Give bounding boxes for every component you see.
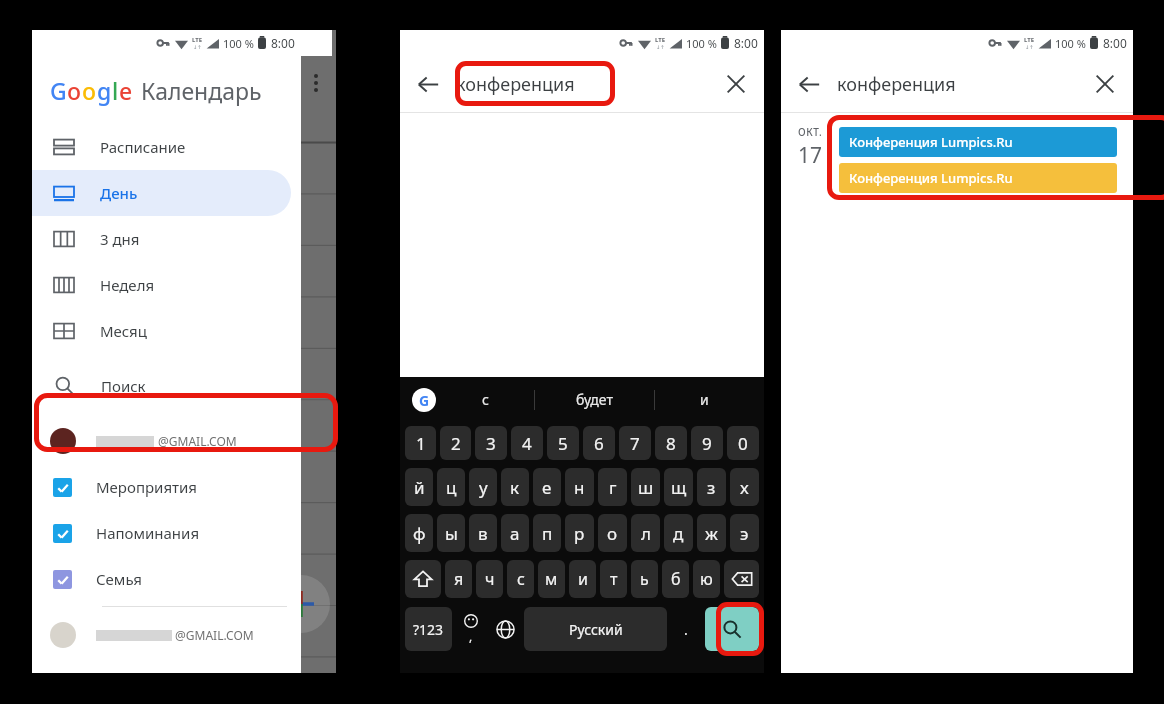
staticText: н [574, 476, 585, 499]
button[interactable]: 7 [619, 426, 651, 460]
staticText: ц [446, 476, 457, 499]
button[interactable]: Конференция Lumpics.Ru [839, 127, 1117, 157]
staticText: з [707, 476, 716, 499]
button[interactable]: @GMAIL.COM [32, 615, 301, 655]
button[interactable]: ю [693, 560, 720, 598]
button[interactable]: е [533, 468, 561, 506]
button[interactable]: ы [437, 514, 465, 552]
button[interactable]: с [507, 560, 534, 598]
button[interactable]: Месяц [32, 308, 291, 354]
button[interactable]: Google [412, 388, 436, 412]
button[interactable]: т [600, 560, 627, 598]
staticText: Русский [569, 620, 623, 639]
button[interactable]: ч [476, 560, 503, 598]
staticText: ж [705, 522, 718, 545]
button[interactable]: Напоминания [32, 510, 301, 556]
staticText: 3 дня [100, 229, 140, 249]
staticText: . [684, 620, 688, 639]
button[interactable]: 9 [691, 426, 723, 460]
staticText: л [641, 522, 651, 545]
button[interactable]: 1 [405, 426, 436, 460]
button[interactable]: Очистить [1077, 56, 1133, 112]
button[interactable]: 5 [547, 426, 579, 460]
staticText: 8 [666, 432, 676, 455]
button[interactable] [705, 607, 759, 651]
button[interactable]: с [436, 377, 534, 422]
button[interactable]: @GMAIL.COM [32, 418, 301, 464]
staticText: г [609, 476, 617, 499]
button[interactable]: р [565, 514, 594, 552]
button[interactable]: ц [437, 468, 465, 506]
button[interactable]: Очистить [708, 56, 764, 112]
staticText: б [671, 568, 681, 590]
staticText: х [740, 476, 749, 499]
staticText: Месяц [100, 321, 147, 341]
staticText: LTE [655, 36, 666, 44]
staticText: ю [700, 568, 713, 590]
button[interactable]: ь [631, 560, 658, 598]
button[interactable]: в [469, 514, 497, 552]
button[interactable]: 8 [655, 426, 687, 460]
button[interactable]: Мероприятия [32, 464, 301, 510]
button[interactable]: будет [535, 377, 654, 422]
button[interactable]: 4 [511, 426, 543, 460]
button[interactable] [490, 607, 520, 651]
button[interactable]: я [445, 560, 472, 598]
staticText: у [479, 476, 488, 499]
button[interactable]: Поиск [32, 360, 301, 410]
staticText: Напоминания [96, 523, 200, 543]
button[interactable]: д [664, 514, 693, 552]
staticText: 17 [798, 141, 823, 170]
staticText: o [82, 75, 97, 106]
staticText: конференция [456, 72, 575, 97]
button[interactable]: м [538, 560, 565, 598]
staticText: 3 [486, 432, 496, 455]
button[interactable]: День [32, 170, 291, 216]
button[interactable]: н [565, 468, 594, 506]
button[interactable]: , [456, 607, 486, 651]
button[interactable]: л [631, 514, 660, 552]
button[interactable]: а [501, 514, 529, 552]
button[interactable]: б [662, 560, 689, 598]
staticText: ↓↑ [193, 44, 202, 50]
staticText: Конференция Lumpics.Ru [849, 133, 1013, 151]
button[interactable]: й [405, 468, 433, 506]
button[interactable]: Неделя [32, 262, 291, 308]
button[interactable]: Расписание [32, 124, 291, 170]
staticText: 4 [522, 432, 532, 455]
button[interactable]: Назад [400, 56, 456, 112]
button[interactable]: к [501, 468, 529, 506]
button[interactable]: х [730, 468, 759, 506]
button[interactable]: Конференция Lumpics.Ru [839, 163, 1117, 193]
button[interactable]: 2 [440, 426, 471, 460]
button[interactable]: Семья [32, 556, 301, 602]
button[interactable]: ш [631, 468, 660, 506]
button[interactable]: Назад [781, 56, 837, 112]
button[interactable]: 3 [475, 426, 507, 460]
button[interactable]: конференция [837, 56, 1077, 112]
button[interactable]: щ [664, 468, 693, 506]
button[interactable]: конференция [456, 56, 708, 112]
button[interactable]: ?123 [405, 607, 452, 651]
button[interactable]: г [598, 468, 627, 506]
button[interactable]: у [469, 468, 497, 506]
staticText: День [100, 183, 138, 203]
button[interactable]: 6 [583, 426, 615, 460]
button[interactable]: и [655, 377, 754, 422]
button[interactable] [405, 560, 441, 598]
button[interactable]: п [533, 514, 561, 552]
button[interactable]: ж [697, 514, 726, 552]
staticText: ы [445, 522, 458, 545]
button[interactable]: . [671, 607, 701, 651]
staticText: LTE [1024, 36, 1035, 44]
button[interactable]: ф [405, 514, 433, 552]
button[interactable]: з [697, 468, 726, 506]
button[interactable]: Русский [524, 607, 667, 651]
button[interactable]: 0 [727, 426, 759, 460]
button[interactable]: э [730, 514, 759, 552]
button[interactable]: о [598, 514, 627, 552]
button[interactable]: 3 дня [32, 216, 291, 262]
button[interactable]: и [569, 560, 596, 598]
button[interactable] [724, 560, 759, 598]
staticText: и [700, 390, 709, 409]
